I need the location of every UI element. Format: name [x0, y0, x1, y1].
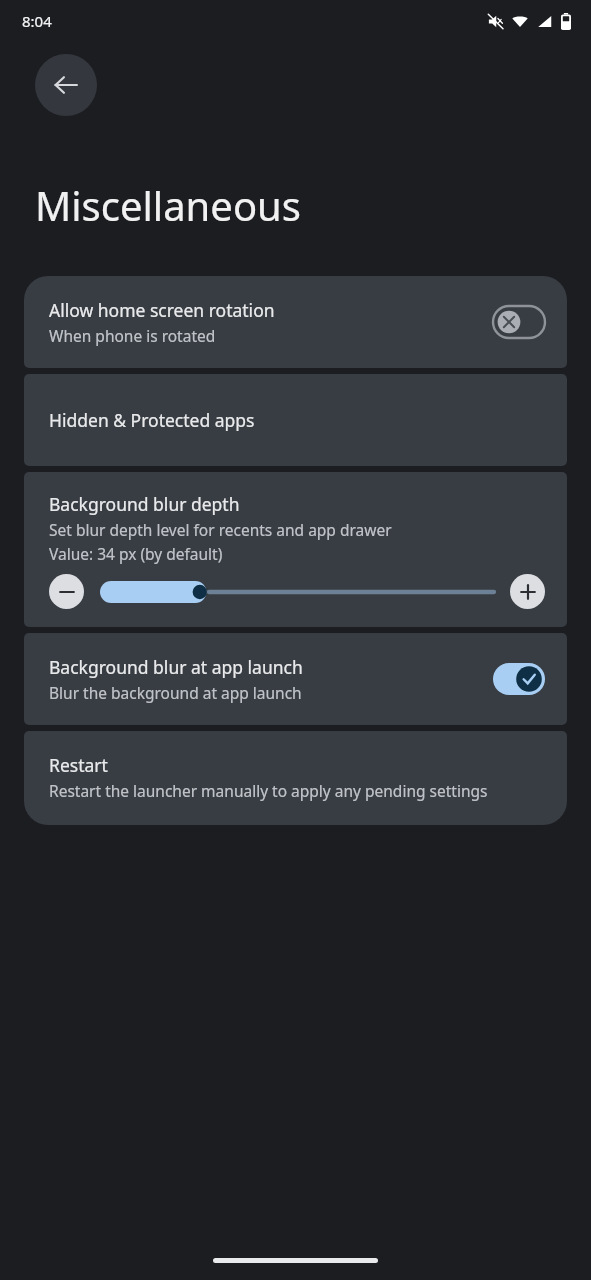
button[interactable]: Background blur depth [24, 472, 567, 627]
staticText: Restart [49, 753, 108, 777]
button[interactable]: Background blur at app launch [24, 633, 567, 725]
staticText: Set blur depth level for recents and app… [49, 519, 392, 540]
button[interactable]: Background blur at app launch, on [493, 663, 545, 695]
button[interactable]: Allow home screen rotation [24, 276, 567, 368]
button[interactable]: Increase blur depth [510, 574, 545, 609]
button[interactable] [100, 579, 494, 605]
button[interactable]: Restart [24, 731, 567, 825]
staticText: Allow home screen rotation [49, 298, 275, 322]
staticText: Background blur depth [49, 492, 240, 516]
staticText: Restart the launcher manually to apply a… [49, 780, 488, 801]
button[interactable]: Back [35, 54, 97, 116]
button[interactable]: Allow home screen rotation, off [493, 306, 545, 338]
staticText: 8:04 [22, 11, 52, 31]
button[interactable]: Decrease blur depth [49, 574, 84, 609]
staticText: Hidden & Protected apps [49, 408, 255, 432]
staticText: Background blur at app launch [49, 655, 303, 679]
staticText: When phone is rotated [49, 325, 216, 346]
staticText: Value: 34 px (by default) [49, 543, 223, 564]
staticText: Blur the background at app launch [49, 682, 302, 703]
staticText: Miscellaneous [35, 178, 301, 232]
button[interactable]: Hidden & Protected apps [24, 374, 567, 466]
